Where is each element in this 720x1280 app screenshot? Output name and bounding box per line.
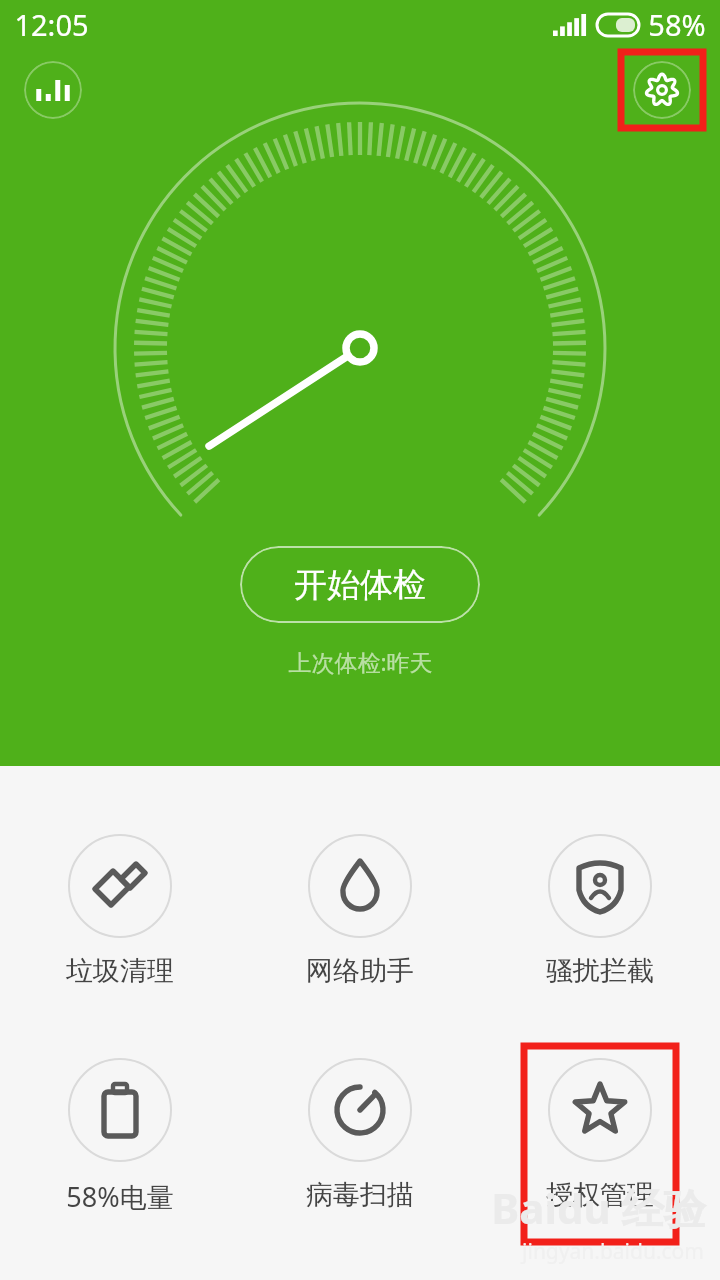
button[interactable]: 病毒扫描 <box>284 1046 436 1212</box>
button[interactable]: 授权管理 <box>524 1046 676 1212</box>
button[interactable]: 垃圾清理 <box>44 822 196 988</box>
button[interactable]: 网络助手 <box>284 822 436 988</box>
staticText: 病毒扫描 <box>306 1178 414 1212</box>
staticText: 12:05 <box>14 5 89 44</box>
button[interactable]: 58%电量 <box>44 1046 196 1215</box>
staticText: 上次体检:昨天 <box>288 646 433 677</box>
staticText: 58%电量 <box>66 1178 174 1215</box>
staticText: 垃圾清理 <box>66 954 174 988</box>
staticText: 网络助手 <box>306 954 414 988</box>
staticText: 开始体检 <box>294 564 426 606</box>
button[interactable]: 骚扰拦截 <box>524 822 676 988</box>
staticText: Baidu 经验 <box>491 1179 706 1236</box>
staticText: 授权管理 <box>546 1178 654 1212</box>
button[interactable]: Settings <box>633 61 691 119</box>
button[interactable]: 开始体检 <box>240 546 480 623</box>
staticText: 58% <box>648 5 706 44</box>
staticText: jingyan.baidu.com <box>522 1237 704 1266</box>
button[interactable]: Statistics <box>24 61 82 119</box>
staticText: 骚扰拦截 <box>546 954 654 988</box>
